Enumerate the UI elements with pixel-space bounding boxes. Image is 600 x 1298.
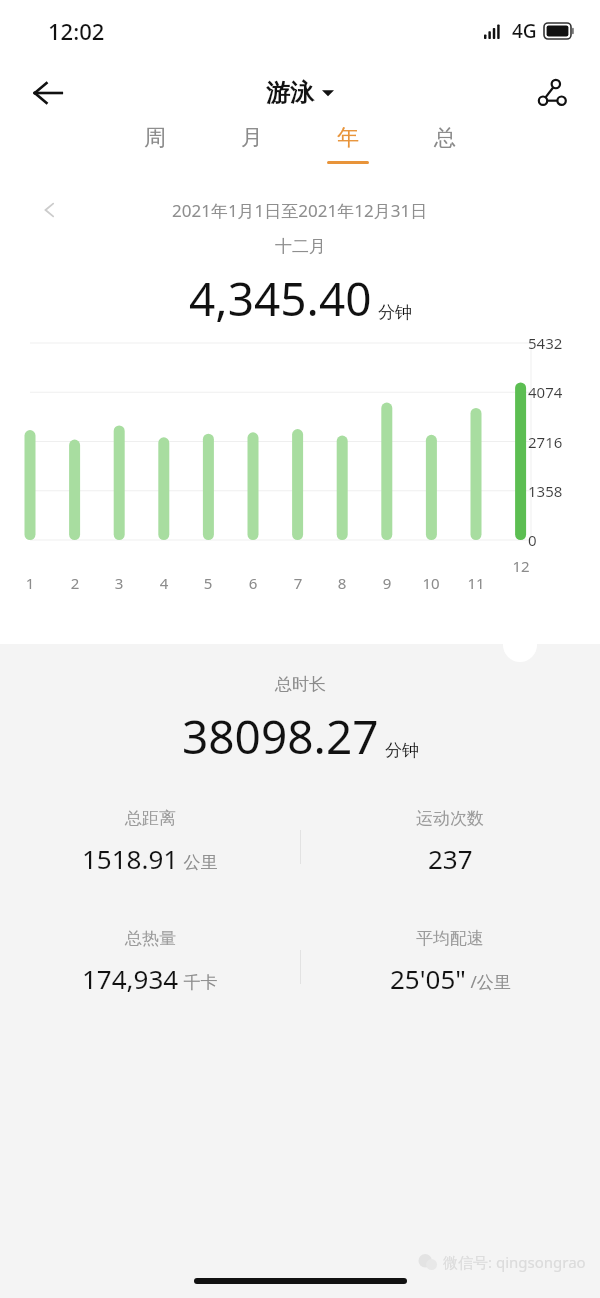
staticText: 38098.27 — [182, 705, 379, 768]
staticText: 10 — [417, 573, 445, 593]
staticText: 微信号: qingsongrao — [443, 1252, 586, 1272]
staticText: 4 — [150, 573, 178, 593]
staticText: 4074 — [528, 382, 563, 402]
button[interactable]: 平均配速 — [300, 928, 600, 1006]
staticText: 年 — [325, 124, 371, 152]
staticText: 月 — [229, 124, 275, 152]
staticText: 12 — [507, 556, 535, 576]
staticText: 总距离 — [125, 808, 176, 829]
button[interactable]: Back — [20, 65, 76, 121]
button[interactable]: 运动次数 — [300, 808, 600, 886]
staticText: 公里 — [179, 850, 218, 873]
button[interactable]: Share — [524, 65, 580, 121]
staticText: 1358 — [528, 481, 563, 501]
staticText: 分钟 — [378, 302, 412, 323]
staticText: 周 — [132, 124, 178, 152]
staticText: 25'05" — [390, 961, 466, 996]
staticText: 12:02 — [48, 16, 105, 46]
staticText: 总热量 — [125, 928, 176, 949]
staticText: 5432 — [528, 333, 563, 353]
staticText: 4G — [512, 18, 537, 44]
button[interactable]: 总热量 — [0, 928, 300, 1006]
staticText: 2021年1月1日至2021年12月31日 — [172, 199, 428, 222]
staticText: /公里 — [466, 970, 511, 993]
staticText: 总时长 — [275, 674, 326, 695]
staticText: 4,345.40 — [189, 267, 372, 330]
staticText: 237 — [428, 841, 473, 876]
staticText: 十二月 — [275, 236, 326, 257]
staticText: 分钟 — [385, 740, 419, 761]
staticText: 游泳 — [266, 78, 314, 108]
staticText: 5 — [194, 573, 222, 593]
staticText: 总 — [422, 124, 468, 152]
button[interactable]: 月 — [229, 124, 275, 161]
staticText: 11 — [462, 573, 490, 593]
button[interactable]: Previous — [30, 190, 70, 230]
button[interactable]: 总距离 — [0, 808, 300, 886]
button[interactable]: 游泳 — [266, 78, 334, 108]
staticText: 0 — [528, 530, 537, 550]
button[interactable]: 年 — [325, 124, 371, 164]
button[interactable]: 总 — [422, 124, 468, 161]
staticText: 运动次数 — [416, 808, 484, 829]
staticText: 千卡 — [179, 970, 218, 993]
staticText: 8 — [328, 573, 356, 593]
staticText: 2 — [61, 573, 89, 593]
staticText: 平均配速 — [416, 928, 484, 949]
staticText: 7 — [284, 573, 312, 593]
staticText: 174,934 — [82, 961, 179, 996]
staticText: 1 — [16, 573, 44, 593]
button[interactable]: 周 — [132, 124, 178, 161]
staticText: 1518.91 — [82, 841, 179, 876]
staticText: 2716 — [528, 432, 563, 452]
staticText: 9 — [373, 573, 401, 593]
staticText: 6 — [239, 573, 267, 593]
staticText: 3 — [105, 573, 133, 593]
